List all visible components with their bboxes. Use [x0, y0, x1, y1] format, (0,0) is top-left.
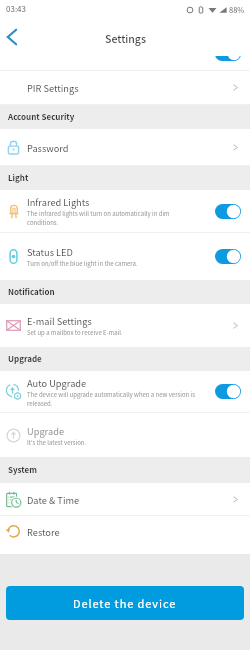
button[interactable]: Back — [0, 24, 26, 50]
button[interactable]: Delete the device — [6, 586, 244, 620]
staticText: Turn on/off the blue light in the camera… — [27, 259, 138, 268]
button[interactable]: Auto Upgrade — [0, 371, 250, 412]
staticText: Delete the device — [73, 595, 177, 611]
staticText: Auto Upgrade — [27, 376, 87, 389]
button[interactable]: Status LED — [215, 249, 241, 264]
staticText: Password — [27, 141, 69, 154]
button[interactable]: Toggle — [215, 56, 241, 61]
staticText: E-mail Settings — [27, 314, 92, 327]
button[interactable]: Password — [0, 129, 250, 165]
staticText: Set up a mailbox to receive E-mail. — [27, 328, 123, 337]
staticText: The infrared lights will turn on automat… — [27, 209, 197, 227]
staticText: Infrared Lights — [27, 195, 90, 208]
staticText: 88% — [229, 4, 245, 15]
button[interactable]: Status LED — [0, 233, 250, 280]
staticText: The device will upgrade automatically wh… — [27, 390, 197, 408]
staticText: Status LED — [27, 245, 73, 258]
staticText: Notification — [8, 286, 55, 298]
staticText: Date & Time — [27, 493, 80, 506]
staticText: Upgrade — [8, 353, 42, 365]
button[interactable]: Restore — [0, 516, 250, 546]
button[interactable]: E-mail Settings — [0, 304, 250, 347]
staticText: Restore — [27, 525, 60, 538]
staticText: PIR Settings — [27, 81, 79, 94]
button[interactable]: Date & Time — [0, 483, 250, 515]
staticText: Settings — [105, 31, 146, 46]
staticText: System — [8, 464, 37, 476]
staticText: It's the latest version. — [27, 438, 87, 447]
button[interactable]: Infrared Lights — [215, 204, 241, 219]
staticText: Account Security — [8, 111, 75, 123]
staticText: Upgrade — [27, 424, 65, 437]
button[interactable]: Auto Upgrade — [215, 384, 241, 399]
staticText: 03:43 — [6, 3, 26, 15]
button[interactable]: Upgrade — [0, 413, 250, 457]
button[interactable]: Infrared Lights — [0, 190, 250, 232]
button[interactable]: PIR Settings — [0, 71, 250, 104]
staticText: Light — [8, 172, 29, 184]
